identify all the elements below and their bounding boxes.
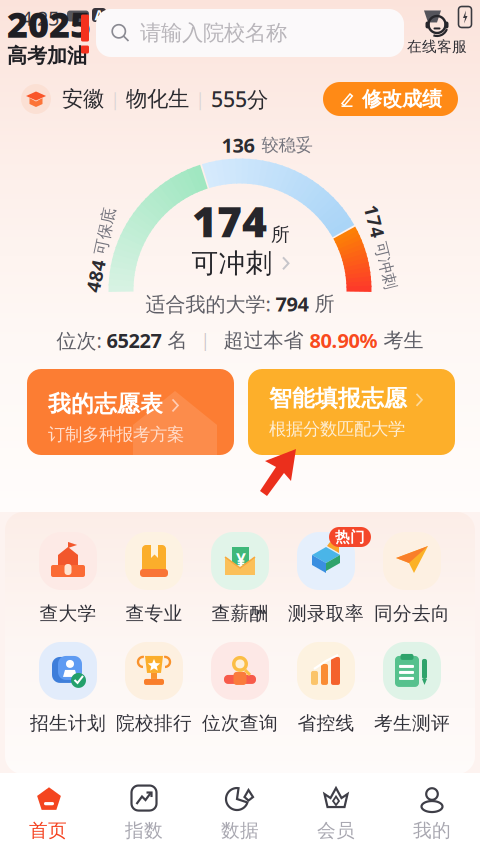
staticText: 智能填报志愿: [269, 384, 407, 412]
button[interactable]: 智能填报志愿: [248, 369, 455, 455]
staticText: 可冲刺: [191, 247, 272, 280]
staticText: 所: [308, 291, 334, 316]
staticText: 物化生: [126, 86, 189, 112]
staticText: 2025: [7, 0, 91, 48]
staticText: 考生测评: [374, 712, 450, 735]
staticText: 555分: [211, 85, 268, 113]
button[interactable]: 考生测评: [369, 642, 455, 735]
staticText: 位次查询: [202, 712, 278, 735]
staticText: 我的: [413, 819, 451, 842]
staticText: 指数: [125, 819, 163, 842]
button[interactable]: 热门: [283, 532, 369, 625]
staticText: 在线客服: [407, 37, 467, 55]
staticText: |: [200, 329, 210, 352]
staticText: 数据: [221, 819, 259, 842]
staticText: 可保底: [96, 240, 144, 260]
staticText: 省控线: [297, 712, 354, 735]
button[interactable]: 我的: [384, 784, 480, 842]
button[interactable]: 查专业: [111, 532, 197, 625]
staticText: 查专业: [125, 602, 182, 625]
button[interactable]: 同分去向: [369, 532, 455, 625]
button[interactable]: 174: [191, 192, 290, 280]
button[interactable]: 数据: [192, 784, 288, 842]
staticText: 首页: [29, 819, 67, 842]
staticText: 高考加油: [7, 44, 87, 68]
staticText: 查大学: [39, 602, 96, 625]
staticText: 174: [338, 235, 371, 259]
staticText: 院校排行: [116, 712, 192, 735]
button[interactable]: 省控线: [283, 642, 369, 735]
staticText: 较稳妥: [261, 134, 312, 156]
staticText: 所: [271, 223, 290, 246]
button[interactable]: 请输入院校名称: [96, 9, 404, 57]
button[interactable]: 指数: [96, 784, 192, 842]
staticText: 会员: [317, 819, 355, 842]
staticText: 订制多种报考方案: [48, 424, 184, 445]
staticText: 136: [221, 132, 254, 158]
staticText: 65227: [106, 327, 161, 354]
staticText: 超过本省: [223, 328, 309, 353]
staticText: 请输入院校名称: [140, 20, 287, 46]
staticText: 位次:: [56, 327, 106, 354]
staticText: 我的志愿表: [48, 390, 163, 418]
staticText: 可冲刺: [376, 237, 424, 257]
staticText: 80.90%: [309, 327, 377, 354]
button[interactable]: 会员: [288, 784, 384, 842]
staticText: 安徽: [62, 86, 104, 112]
button[interactable]: 修改成绩: [323, 82, 458, 116]
staticText: |: [195, 87, 205, 111]
staticText: A: [94, 6, 103, 24]
button[interactable]: 位次查询: [197, 642, 283, 735]
staticText: 热门: [335, 528, 365, 546]
staticText: 174: [192, 192, 267, 249]
staticText: 同分去向: [374, 602, 450, 625]
staticText: 4:25: [21, 5, 59, 31]
staticText: 查薪酬: [211, 602, 268, 625]
button[interactable]: 我的志愿表: [27, 369, 234, 455]
staticText: 修改成绩: [362, 87, 442, 111]
button[interactable]: 招生计划: [25, 642, 111, 735]
staticText: 考生: [377, 328, 423, 353]
staticText: ¥: [236, 548, 246, 571]
staticText: |: [110, 87, 120, 111]
button[interactable]: 查大学: [25, 532, 111, 625]
staticText: 根据分数匹配大学: [269, 418, 405, 440]
staticText: 适合我的大学:: [145, 290, 275, 317]
staticText: 名: [161, 328, 187, 353]
button[interactable]: 首页: [0, 784, 96, 842]
button[interactable]: 院校排行: [111, 642, 197, 735]
staticText: 794: [275, 290, 308, 317]
button[interactable]: 在线客服: [407, 8, 467, 55]
staticText: 招生计划: [30, 712, 106, 735]
staticText: 测录取率: [288, 602, 364, 625]
button[interactable]: ¥: [197, 532, 283, 625]
